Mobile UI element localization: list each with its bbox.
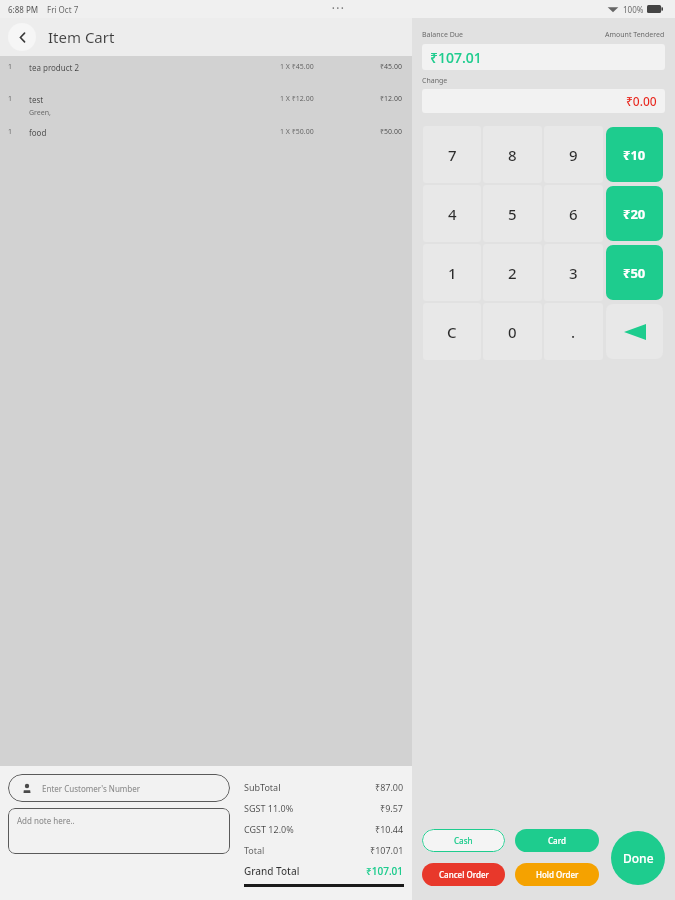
- staticText: tea product 2: [29, 62, 80, 73]
- button[interactable]: Card: [515, 829, 599, 852]
- staticText: 100%: [623, 4, 644, 15]
- button[interactable]: 4: [423, 185, 481, 242]
- staticText: 1 X ₹50.00: [280, 127, 314, 137]
- staticText: 4: [448, 204, 457, 224]
- staticText: ₹107.01: [366, 864, 404, 878]
- staticText: 1 X ₹12.00: [280, 94, 314, 104]
- button[interactable]: ₹10: [606, 127, 663, 182]
- button[interactable]: ₹107.01: [422, 44, 665, 70]
- staticText: ₹12.00: [358, 94, 402, 104]
- button[interactable]: 1: [0, 88, 412, 121]
- staticText: ₹10.44: [375, 823, 404, 835]
- button[interactable]: 9: [544, 126, 603, 183]
- button[interactable]: 6: [544, 185, 603, 242]
- staticText: Item Cart: [48, 27, 115, 47]
- staticText: ₹0.00: [626, 93, 657, 109]
- staticText: Cancel Order: [439, 869, 489, 880]
- button[interactable]: 0: [483, 303, 542, 360]
- staticText: .: [571, 322, 576, 342]
- staticText: Green,: [29, 108, 51, 118]
- staticText: ₹20: [623, 205, 646, 223]
- staticText: Balance Due: [422, 30, 464, 40]
- staticText: 1: [8, 94, 13, 104]
- staticText: 2: [508, 263, 517, 283]
- staticText: ₹45.00: [358, 62, 402, 72]
- button[interactable]: 2: [483, 244, 542, 301]
- button[interactable]: 1: [423, 244, 481, 301]
- staticText: Fri Oct 7: [47, 4, 79, 15]
- button[interactable]: Backspace: [606, 304, 663, 359]
- button[interactable]: .: [544, 303, 603, 360]
- staticText: C: [447, 322, 457, 342]
- staticText: 1 X ₹45.00: [280, 62, 314, 72]
- staticText: Hold Order: [536, 869, 579, 880]
- button[interactable]: ₹50: [606, 245, 663, 300]
- button[interactable]: 3: [544, 244, 603, 301]
- staticText: ₹9.57: [380, 802, 404, 814]
- staticText: food: [29, 127, 47, 138]
- staticText: Enter Customer's Number: [42, 783, 141, 794]
- button[interactable]: Cash: [422, 829, 505, 852]
- staticText: 0: [508, 322, 517, 342]
- button[interactable]: 1: [0, 121, 412, 153]
- button[interactable]: 5: [483, 185, 542, 242]
- button[interactable]: C: [423, 303, 481, 360]
- staticText: • • •: [332, 4, 344, 14]
- staticText: SGST 11.0%: [244, 802, 294, 814]
- staticText: Done: [623, 850, 654, 866]
- button[interactable]: ₹0.00: [422, 89, 665, 113]
- staticText: 8: [508, 145, 517, 165]
- staticText: Cash: [454, 835, 473, 846]
- staticText: Add note here..: [17, 815, 75, 826]
- staticText: ₹87.00: [375, 781, 404, 793]
- staticText: 1: [8, 127, 13, 137]
- button[interactable]: 1: [0, 56, 412, 88]
- staticText: ₹107.01: [430, 48, 482, 67]
- button[interactable]: 8: [483, 126, 542, 183]
- staticText: SubTotal: [244, 781, 281, 793]
- staticText: Change: [422, 76, 448, 86]
- staticText: 5: [508, 204, 517, 224]
- staticText: Amount Tendered: [605, 30, 665, 40]
- staticText: Total: [244, 844, 265, 856]
- staticText: Card: [548, 835, 566, 846]
- staticText: 1: [8, 62, 13, 72]
- button[interactable]: Done: [611, 831, 665, 885]
- staticText: 6: [569, 204, 578, 224]
- staticText: test: [29, 94, 44, 105]
- staticText: 6:88 PM: [8, 4, 39, 15]
- staticText: 9: [569, 145, 578, 165]
- staticText: 1: [448, 263, 457, 283]
- button[interactable]: ₹20: [606, 186, 663, 241]
- staticText: 7: [448, 145, 457, 165]
- staticText: CGST 12.0%: [244, 823, 294, 835]
- staticText: ₹50.00: [358, 127, 402, 137]
- staticText: ₹50: [623, 264, 646, 282]
- button[interactable]: Hold Order: [515, 863, 599, 886]
- staticText: 3: [569, 263, 578, 283]
- staticText: Grand Total: [244, 864, 300, 878]
- staticText: ₹10: [623, 146, 646, 164]
- button[interactable]: 7: [423, 126, 481, 183]
- staticText: ₹107.01: [370, 844, 404, 856]
- button[interactable]: Enter Customer's Number: [8, 774, 230, 802]
- button[interactable]: Back: [8, 23, 36, 51]
- button[interactable]: Add note here..: [8, 808, 230, 854]
- button[interactable]: Cancel Order: [422, 863, 505, 886]
